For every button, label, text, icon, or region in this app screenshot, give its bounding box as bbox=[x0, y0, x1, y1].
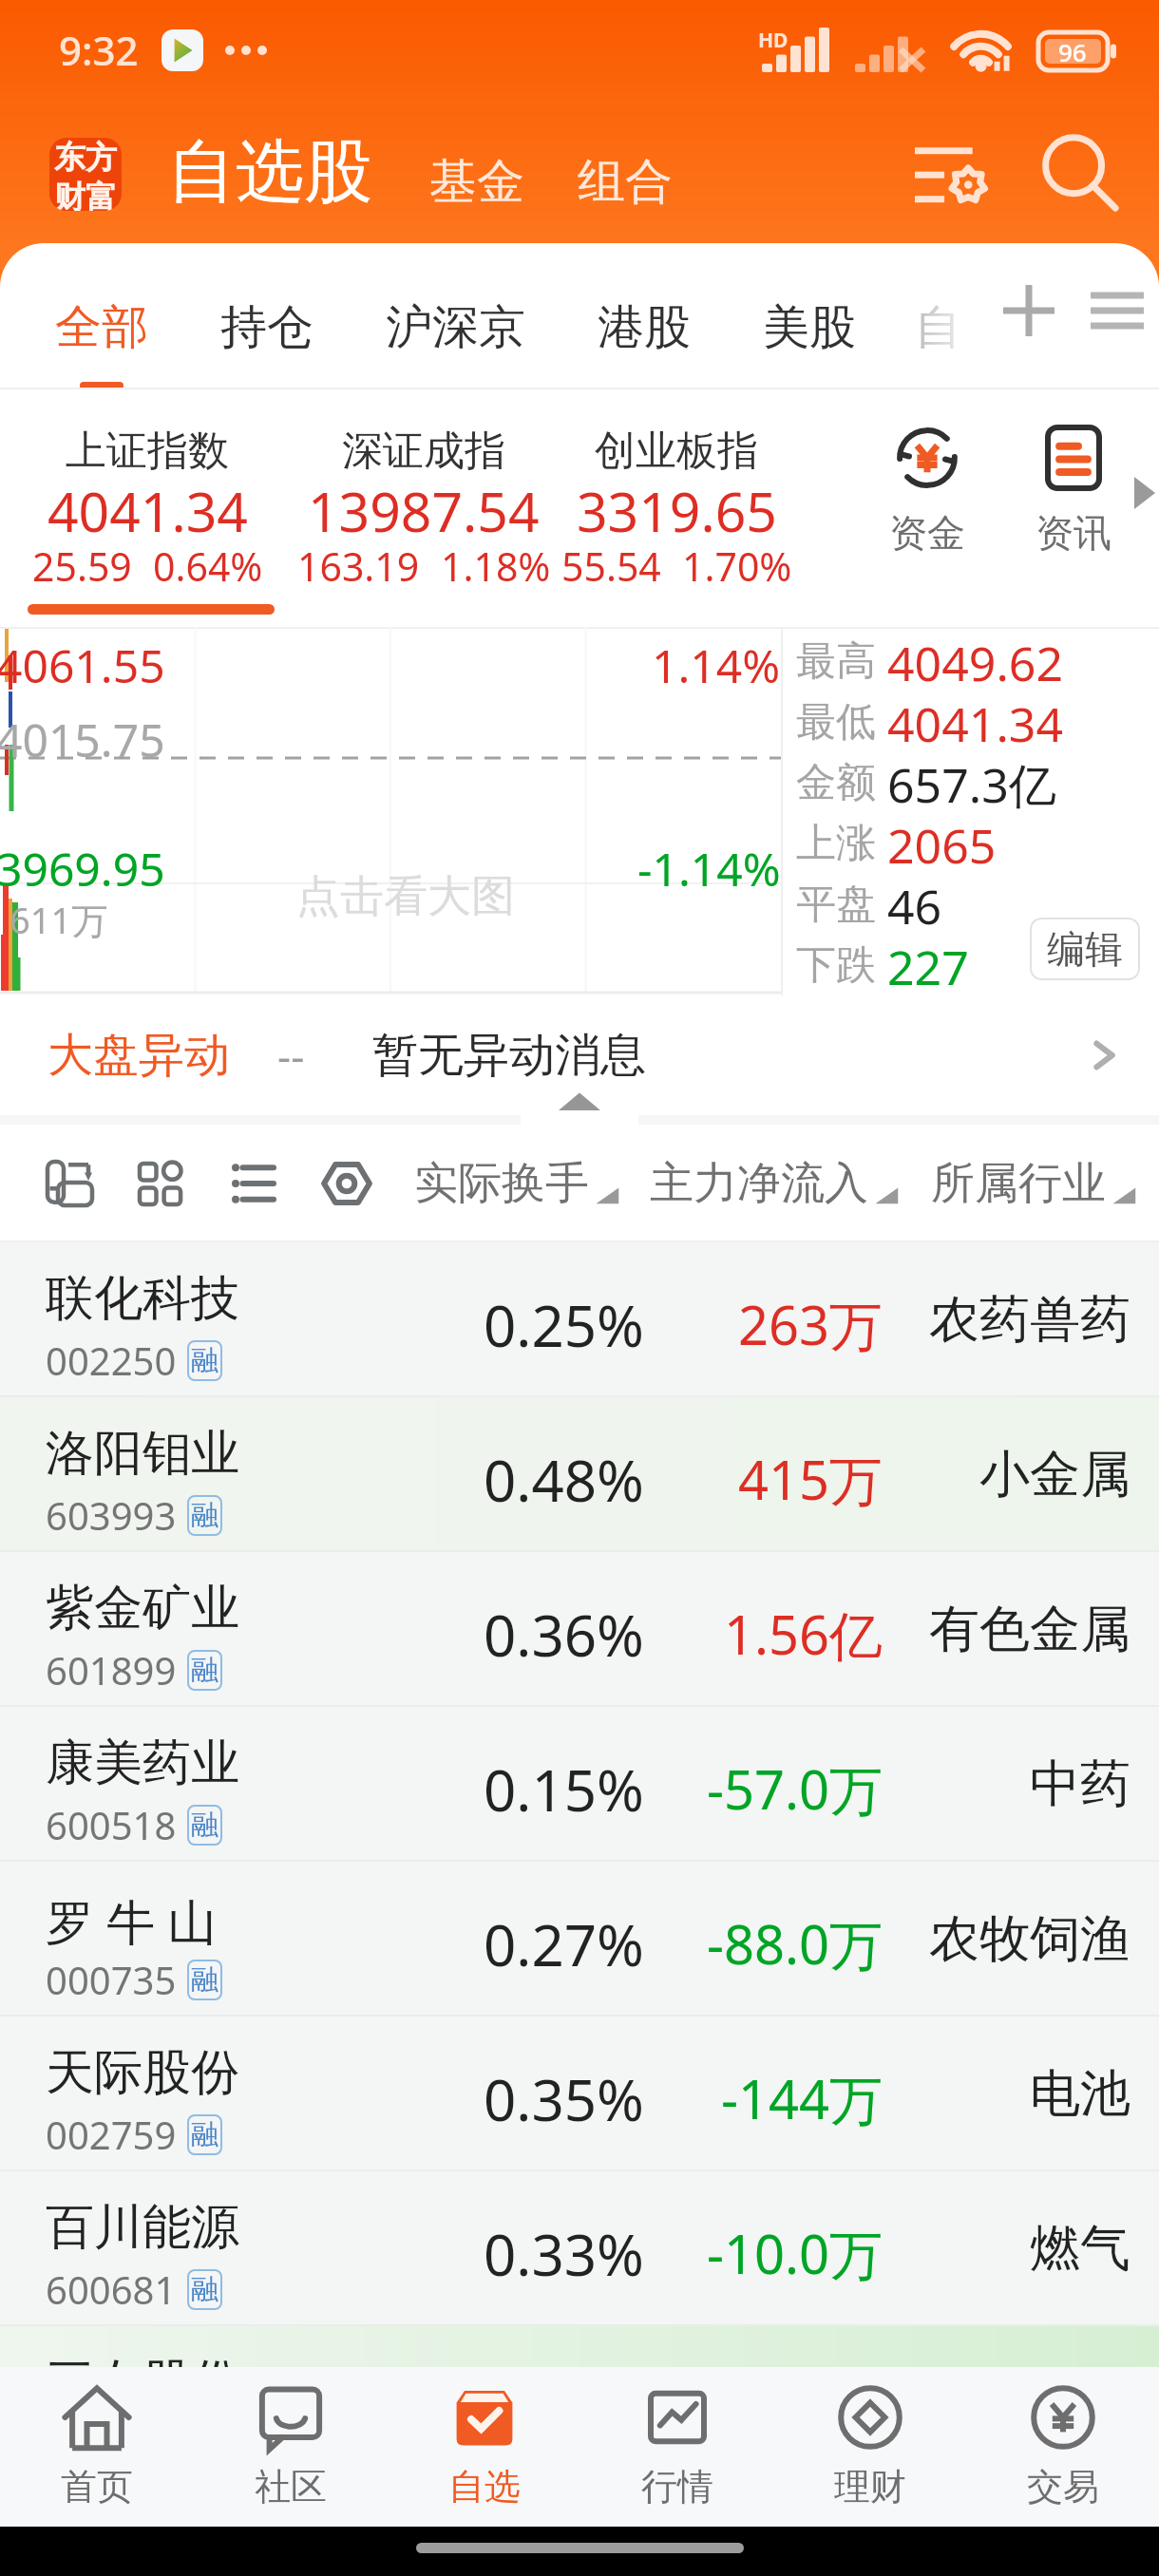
button[interactable]: 基金 bbox=[429, 152, 524, 212]
button[interactable]: 大盘异动 bbox=[0, 995, 1159, 1115]
button[interactable]: 紫金矿业 bbox=[0, 1552, 1159, 1707]
staticText: 002759 bbox=[46, 2109, 177, 2160]
button[interactable]: 所属行业 bbox=[931, 1156, 1138, 1211]
button[interactable]: 创业板指 bbox=[553, 389, 800, 627]
staticText: 农药兽药 bbox=[929, 1288, 1130, 1352]
button[interactable]: Search bbox=[1032, 124, 1130, 223]
staticText: 沪深京 bbox=[386, 298, 525, 357]
button[interactable]: Sort settings bbox=[904, 128, 996, 219]
button[interactable]: 深证成指 bbox=[294, 389, 553, 627]
staticText: 000735 bbox=[46, 1954, 177, 2005]
staticText: 46 bbox=[887, 874, 942, 935]
staticText: 4041.34 bbox=[47, 474, 248, 548]
staticText: 创业板指 bbox=[595, 426, 758, 477]
button[interactable]: 罗 牛 山 bbox=[0, 1862, 1159, 2017]
staticText: -144万 bbox=[721, 2062, 883, 2134]
staticText: 首页 bbox=[61, 2464, 133, 2510]
button[interactable]: 实际换手 bbox=[414, 1156, 621, 1211]
staticText: 0.48% bbox=[484, 1441, 644, 1519]
staticText: 1.56亿 bbox=[724, 1598, 883, 1670]
staticText: 资讯 bbox=[1035, 509, 1111, 557]
staticText: 415万 bbox=[738, 1443, 883, 1515]
button[interactable]: 首页 bbox=[0, 2367, 194, 2527]
staticText: 社区 bbox=[255, 2464, 327, 2510]
staticText: 农牧饲渔 bbox=[929, 1907, 1130, 1971]
staticText: 融 bbox=[191, 2117, 218, 2152]
staticText: 融 bbox=[191, 1343, 218, 1378]
button[interactable]: 康美药业 bbox=[0, 1707, 1159, 1862]
button[interactable]: 洛阳钼业 bbox=[0, 1397, 1159, 1552]
staticText: 1.70% bbox=[682, 540, 792, 593]
button[interactable]: List view bbox=[232, 1164, 274, 1203]
button[interactable]: Settings bbox=[322, 1161, 371, 1206]
staticText: 电池 bbox=[1030, 2062, 1130, 2126]
staticText: 交易 bbox=[1027, 2464, 1099, 2510]
staticText: 最低 bbox=[796, 697, 876, 748]
staticText: 1.18% bbox=[441, 540, 551, 593]
staticText: 大盘异动 bbox=[47, 1027, 230, 1084]
button[interactable]: 自选 bbox=[388, 2367, 580, 2527]
button[interactable]: 交易 bbox=[966, 2367, 1159, 2527]
staticText: 4041.34 bbox=[887, 691, 1063, 752]
staticText: 实际换手 bbox=[414, 1156, 589, 1211]
button[interactable]: 资讯 bbox=[1003, 389, 1144, 627]
staticText: 全部 bbox=[55, 298, 148, 357]
staticText: -1.14% bbox=[637, 838, 781, 900]
staticText: 康美药业 bbox=[46, 1733, 239, 1793]
staticText: 资金 bbox=[889, 509, 965, 557]
staticText: 263万 bbox=[738, 1288, 883, 1360]
staticText: 4049.62 bbox=[887, 631, 1063, 691]
staticText: 天际股份 bbox=[46, 2042, 239, 2103]
staticText: 603993 bbox=[46, 1489, 177, 1541]
button[interactable]: Compare bbox=[46, 1159, 93, 1208]
button[interactable]: 天际股份 bbox=[0, 2017, 1159, 2171]
staticText: 1.14% bbox=[652, 635, 781, 696]
staticText: 融 bbox=[191, 1962, 218, 1998]
staticText: 96 bbox=[1058, 35, 1087, 68]
button[interactable]: 组合 bbox=[578, 152, 673, 212]
staticText: 0.25% bbox=[484, 1286, 644, 1364]
staticText: 下跌 bbox=[796, 940, 876, 991]
button[interactable]: 行情 bbox=[580, 2367, 773, 2527]
button[interactable]: 社区 bbox=[194, 2367, 388, 2527]
staticText: 上证指数 bbox=[66, 426, 229, 477]
button[interactable]: 编辑 bbox=[1030, 918, 1140, 980]
staticText: 最高 bbox=[796, 636, 876, 687]
staticText: 洛阳钼业 bbox=[46, 1423, 239, 1484]
staticText: 小金属 bbox=[979, 1443, 1130, 1506]
staticText: -57.0万 bbox=[707, 1752, 883, 1825]
staticText: 600681 bbox=[46, 2263, 177, 2315]
staticText: 25.59 bbox=[32, 540, 132, 593]
staticText: 融 bbox=[191, 1498, 218, 1533]
button[interactable]: 联化科技 bbox=[0, 1242, 1159, 1397]
button[interactable]: 港股 bbox=[598, 243, 691, 389]
button[interactable]: 美股 bbox=[763, 243, 856, 389]
staticText: 持仓 bbox=[220, 298, 313, 357]
button[interactable]: 理财 bbox=[773, 2367, 966, 2527]
button[interactable]: Menu bbox=[1074, 243, 1159, 389]
staticText: 美股 bbox=[763, 298, 856, 357]
staticText: 行情 bbox=[641, 2464, 713, 2510]
staticText: -10.0万 bbox=[707, 2217, 883, 2289]
button[interactable]: 沪深京 bbox=[386, 243, 525, 389]
button[interactable]: 东方 bbox=[49, 138, 122, 211]
staticText: 联化科技 bbox=[46, 1268, 239, 1329]
button[interactable]: Add bbox=[983, 243, 1074, 389]
button[interactable]: 主力净流入 bbox=[650, 1156, 901, 1211]
staticText: 东方 bbox=[54, 138, 117, 178]
staticText: 0.33% bbox=[484, 2215, 644, 2293]
button[interactable]: 上证指数 bbox=[0, 389, 294, 627]
staticText: 紫金矿业 bbox=[46, 1578, 239, 1638]
staticText: 理财 bbox=[834, 2464, 906, 2510]
staticText: 主力净流入 bbox=[650, 1156, 868, 1211]
staticText: 4015.75 bbox=[0, 709, 165, 770]
button[interactable] bbox=[521, 1083, 638, 1125]
button[interactable]: 持仓 bbox=[220, 243, 313, 389]
button[interactable]: 百川能源 bbox=[0, 2171, 1159, 2326]
button[interactable]: Grid view bbox=[138, 1162, 181, 1205]
staticText: 0.15% bbox=[484, 1751, 644, 1828]
staticText: 罗 牛 山 bbox=[46, 1887, 217, 1954]
button[interactable]: 资金 bbox=[851, 389, 1003, 627]
button[interactable]: 全部 bbox=[55, 243, 148, 389]
staticText: 港股 bbox=[598, 298, 691, 357]
